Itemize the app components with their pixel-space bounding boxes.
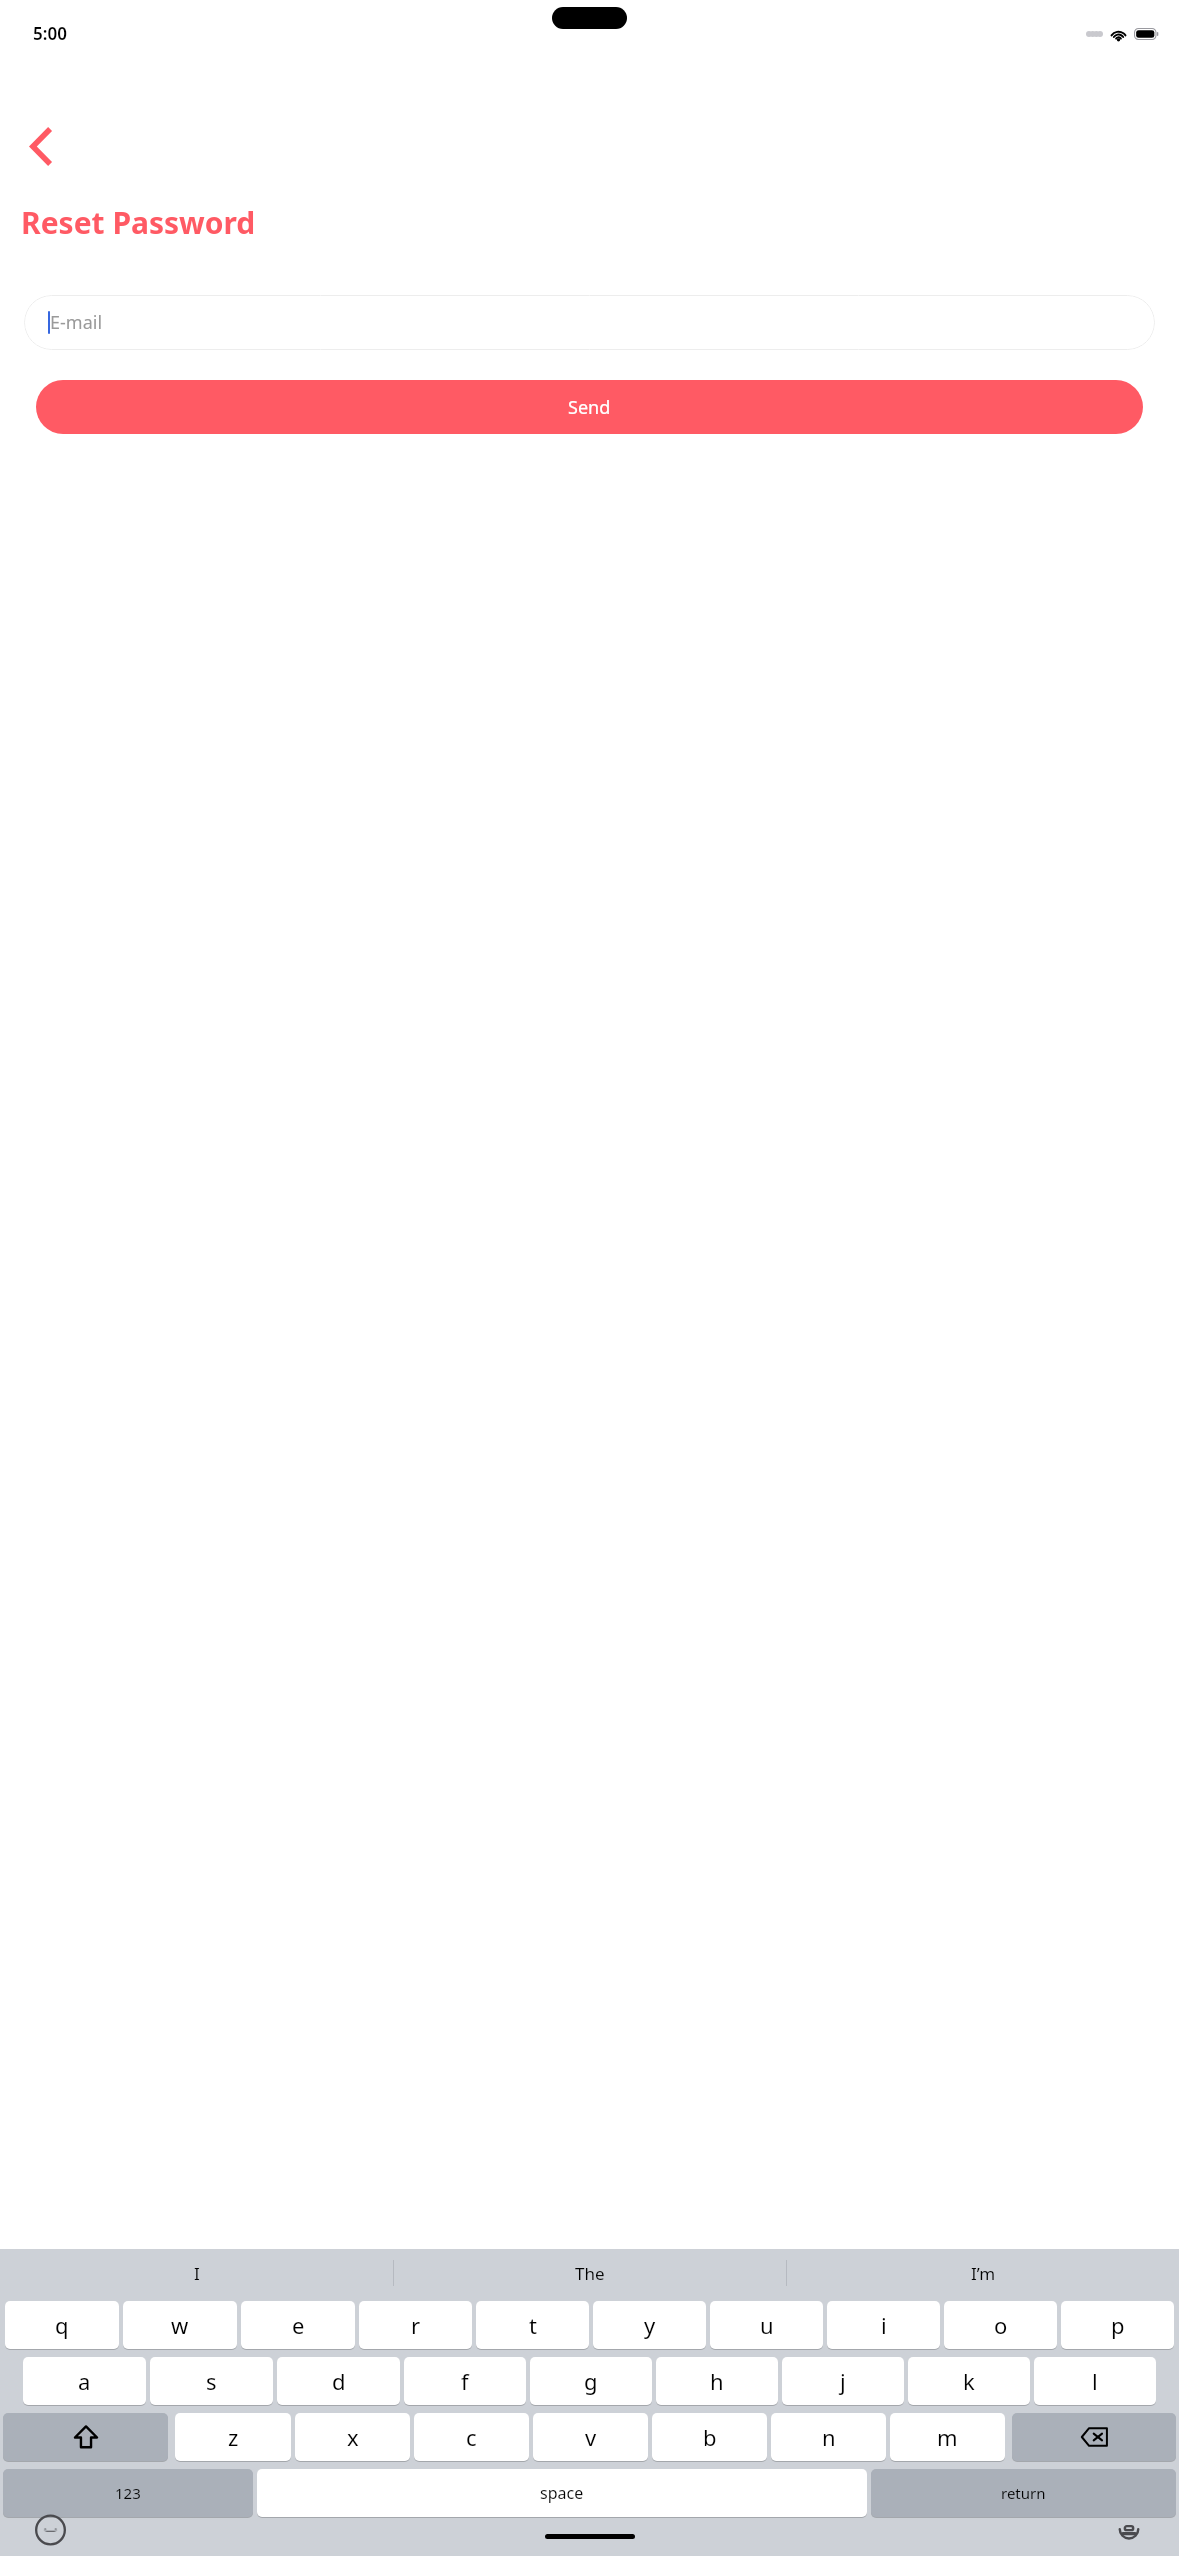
button[interactable]: b <box>652 2413 767 2461</box>
button[interactable]: m <box>890 2413 1005 2461</box>
staticText: m <box>937 2422 958 2452</box>
button[interactable]: y <box>593 2301 706 2349</box>
button[interactable]: E-mail <box>24 295 1155 350</box>
button[interactable]: I <box>0 2249 393 2297</box>
staticText: p <box>1111 2310 1125 2340</box>
button[interactable]: e <box>241 2301 355 2349</box>
staticText: d <box>332 2366 346 2396</box>
button[interactable]: return <box>871 2469 1176 2517</box>
staticText: r <box>411 2310 421 2340</box>
staticText: h <box>710 2366 724 2396</box>
button[interactable]: g <box>530 2357 652 2405</box>
button[interactable]: l <box>1034 2357 1156 2405</box>
button[interactable]: k <box>908 2357 1030 2405</box>
staticText: i <box>881 2310 887 2340</box>
staticText: I’m <box>971 2262 996 2285</box>
button[interactable]: s <box>150 2357 273 2405</box>
staticText: Send <box>568 395 611 420</box>
button[interactable] <box>1012 2413 1176 2461</box>
button[interactable]: x <box>295 2413 410 2461</box>
button[interactable]: i <box>827 2301 940 2349</box>
button[interactable]: The <box>394 2249 786 2297</box>
button[interactable]: Emoji <box>28 2526 72 2534</box>
button[interactable]: 123 <box>3 2469 253 2517</box>
staticText: c <box>466 2422 477 2452</box>
staticText: 5:00 <box>33 22 67 45</box>
button[interactable]: Send <box>36 380 1143 434</box>
staticText: o <box>994 2310 1008 2340</box>
staticText: q <box>55 2310 69 2340</box>
button[interactable]: j <box>782 2357 904 2405</box>
staticText: w <box>171 2310 189 2340</box>
staticText: space <box>540 2482 584 2504</box>
staticText: e <box>292 2310 305 2340</box>
staticText: z <box>228 2422 239 2452</box>
staticText: u <box>760 2310 774 2340</box>
other: Backspace <box>1012 2413 1176 2462</box>
button[interactable]: t <box>476 2301 589 2349</box>
staticText: E-mail <box>50 310 103 335</box>
staticText: j <box>840 2366 846 2396</box>
button[interactable]: d <box>277 2357 400 2405</box>
button[interactable]: v <box>533 2413 648 2461</box>
staticText: I <box>194 2262 200 2285</box>
button[interactable]: n <box>771 2413 886 2461</box>
button[interactable]: Back <box>12 118 68 174</box>
staticText: b <box>703 2422 717 2452</box>
staticText: y <box>644 2310 656 2340</box>
staticText: return <box>1001 2483 1046 2503</box>
button[interactable] <box>3 2413 168 2461</box>
staticText: f <box>461 2366 469 2396</box>
button[interactable]: w <box>123 2301 237 2349</box>
staticText: 123 <box>115 2483 141 2503</box>
staticText: g <box>584 2366 598 2396</box>
button[interactable]: a <box>23 2357 146 2405</box>
button[interactable]: Dictation <box>1107 2526 1151 2534</box>
staticText: l <box>1092 2366 1098 2396</box>
button[interactable]: f <box>404 2357 526 2405</box>
button[interactable]: r <box>359 2301 472 2349</box>
button[interactable]: q <box>5 2301 119 2349</box>
button[interactable]: p <box>1061 2301 1174 2349</box>
button[interactable]: o <box>944 2301 1057 2349</box>
staticText: t <box>529 2310 537 2340</box>
staticText: v <box>585 2422 597 2452</box>
button[interactable]: I’m <box>787 2249 1179 2297</box>
staticText: Reset Password <box>21 202 256 243</box>
other: Shift <box>3 2413 168 2462</box>
button[interactable]: c <box>414 2413 529 2461</box>
staticText: x <box>347 2422 359 2452</box>
staticText: s <box>206 2366 217 2396</box>
button[interactable]: space <box>257 2469 867 2517</box>
staticText: a <box>78 2366 91 2396</box>
staticText: k <box>963 2366 975 2396</box>
staticText: The <box>575 2262 605 2285</box>
button[interactable]: z <box>175 2413 291 2461</box>
button[interactable]: h <box>656 2357 778 2405</box>
staticText: n <box>822 2422 836 2452</box>
button[interactable]: u <box>710 2301 823 2349</box>
